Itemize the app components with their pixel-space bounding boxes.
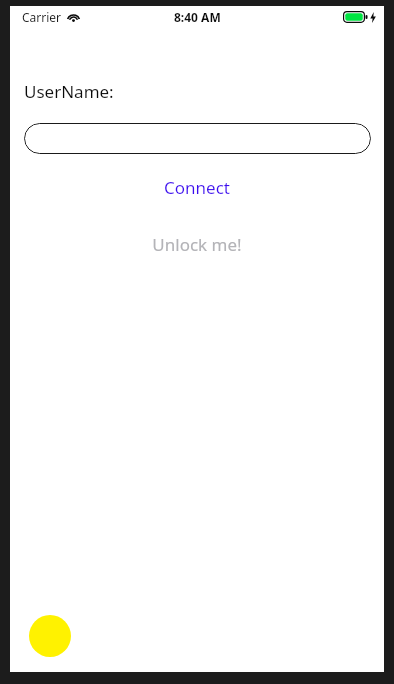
staticText: Unlock me! — [152, 233, 242, 256]
staticText: Carrier — [22, 9, 62, 25]
button[interactable] — [24, 123, 371, 154]
button[interactable]: Status indicator — [29, 615, 71, 657]
staticText: UserName: — [24, 80, 114, 103]
staticText: 8:40 AM — [174, 9, 221, 25]
button[interactable]: Connect — [10, 172, 384, 203]
button[interactable]: Unlock me! — [10, 229, 384, 260]
staticText: Connect — [164, 176, 230, 199]
